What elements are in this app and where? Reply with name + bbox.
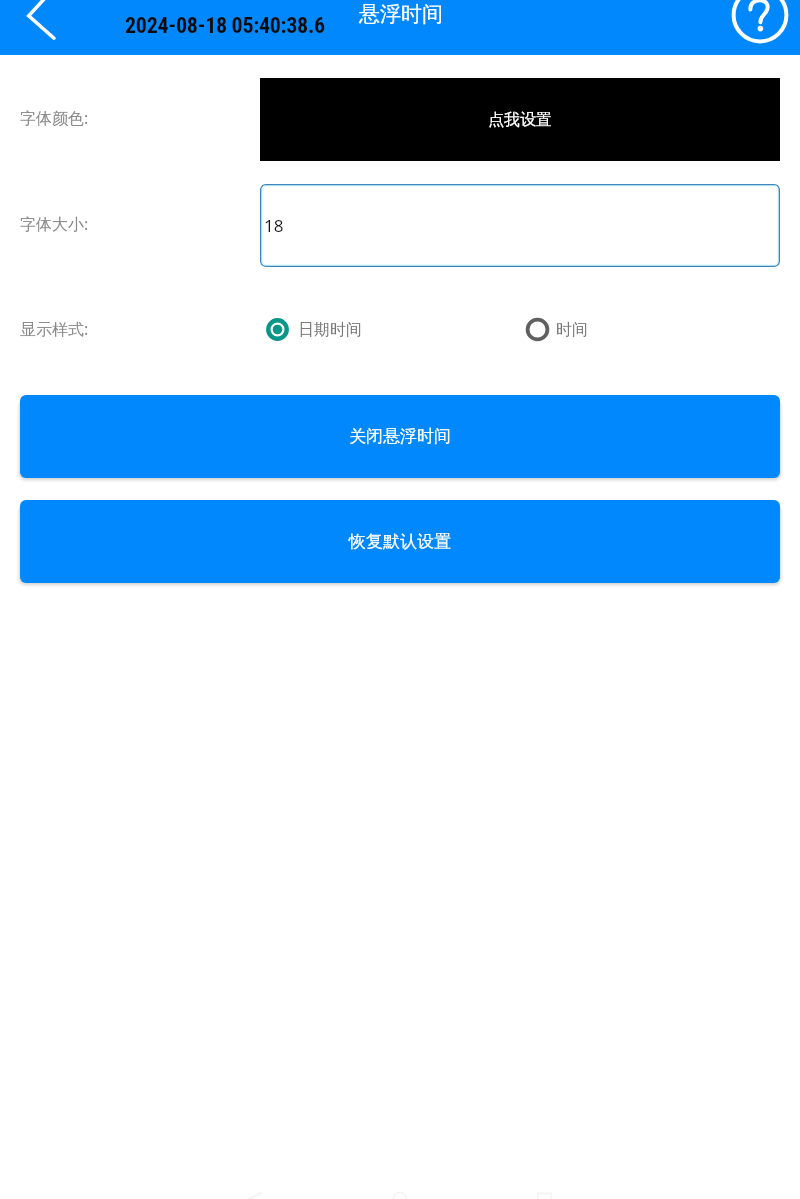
button[interactable]: 时间 (526, 318, 588, 341)
button[interactable]: 关闭悬浮时间 (20, 395, 780, 478)
staticText: 2024-08-18 05:40:38.6 (125, 13, 325, 39)
staticText: 18 (264, 214, 284, 237)
staticText: 悬浮时间 (359, 1, 443, 27)
button[interactable]: 日期时间 (266, 318, 362, 341)
staticText: 显示样式: (20, 318, 89, 340)
staticText: 恢复默认设置 (349, 531, 451, 552)
staticText: 点我设置 (488, 110, 552, 130)
button[interactable]: Back (0, 0, 60, 55)
button[interactable]: Help (732, 0, 788, 55)
staticText: 日期时间 (298, 320, 362, 340)
staticText: 字体大小: (20, 213, 89, 235)
staticText: 关闭悬浮时间 (349, 426, 451, 447)
button[interactable]: 点我设置 (260, 78, 780, 161)
button[interactable]: 18 (260, 184, 780, 267)
button[interactable]: 恢复默认设置 (20, 500, 780, 583)
staticText: 字体颜色: (20, 107, 89, 129)
staticText: 时间 (556, 320, 588, 340)
